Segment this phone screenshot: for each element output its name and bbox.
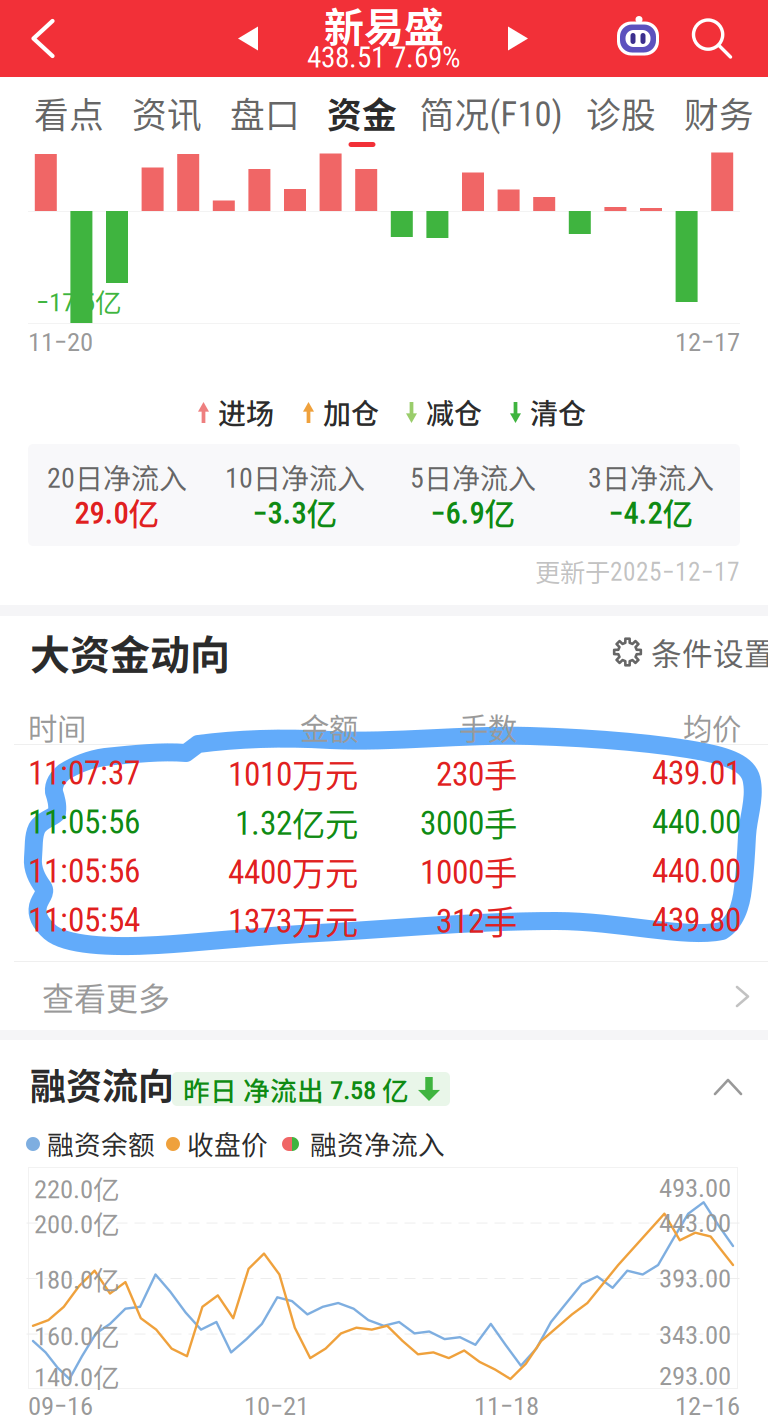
staticText: 293.00 (659, 1360, 731, 1392)
staticText: 减仓 (426, 392, 482, 432)
staticText: 230手 (436, 749, 517, 797)
button[interactable]: Next stock (486, 0, 550, 77)
staticText: 11−20 (28, 326, 93, 358)
staticText: 1010万元 (228, 749, 358, 797)
staticText: 200.0亿 (34, 1204, 120, 1242)
staticText: 29.0亿 (74, 490, 159, 534)
button[interactable]: Search (674, 0, 750, 77)
staticText: 440.00 (652, 851, 741, 891)
staticText: 盘口 (230, 88, 300, 138)
button[interactable]: Previous stock (216, 0, 280, 77)
staticText: 手数 (459, 706, 517, 748)
staticText: 1.32亿元 (235, 798, 358, 846)
staticText: 5日净流入 (410, 457, 536, 497)
staticText: −3.3亿 (252, 490, 337, 534)
staticText: −6.9亿 (430, 490, 515, 534)
staticText: −17.5亿 (36, 282, 122, 320)
staticText: 查看更多 (42, 973, 170, 1020)
staticText: 财务 (684, 88, 754, 138)
staticText: 新易盛 (324, 0, 444, 53)
button[interactable]: 诊股 (555, 77, 687, 155)
staticText: 4400万元 (228, 847, 358, 895)
staticText: 393.00 (659, 1263, 731, 1294)
button[interactable]: 简况(F10) (425, 77, 557, 155)
staticText: 11:05:56 (28, 802, 140, 842)
staticText: 条件设置 (651, 630, 768, 674)
staticText: 20日净流入 (47, 457, 187, 497)
staticText: 220.0亿 (34, 1169, 120, 1207)
staticText: 资讯 (132, 88, 202, 138)
staticText: 清仓 (530, 392, 586, 432)
staticText: 439.80 (652, 900, 741, 940)
staticText: 金额 (300, 706, 358, 748)
staticText: 12−17 (675, 326, 740, 358)
staticText: 10日净流入 (225, 457, 365, 497)
staticText: 343.00 (659, 1319, 731, 1351)
button[interactable]: Collapse (698, 1062, 758, 1112)
staticText: 更新于2025−12−17 (535, 553, 740, 589)
staticText: 融资流向 (30, 1058, 174, 1110)
staticText: 440.00 (652, 802, 741, 842)
staticText: 3日净流入 (588, 457, 714, 497)
button[interactable]: AI assistant (600, 0, 676, 77)
staticText: 3000手 (420, 798, 517, 846)
staticText: 09−16 (28, 1390, 93, 1422)
staticText: 160.0亿 (34, 1316, 120, 1354)
staticText: 加仓 (323, 392, 379, 432)
staticText: 资金 (327, 88, 397, 138)
button[interactable]: 盘口 (199, 77, 331, 155)
staticText: 312手 (436, 896, 517, 944)
staticText: 均价 (683, 706, 741, 748)
staticText: 收盘价 (187, 1124, 268, 1162)
button[interactable]: 查看更多 (0, 962, 768, 1031)
staticText: 大资金动向 (30, 623, 230, 681)
button[interactable]: 资金 (296, 77, 428, 155)
button[interactable]: 看点 (3, 77, 135, 155)
staticText: 140.0亿 (34, 1357, 120, 1395)
button[interactable]: 资讯 (101, 77, 233, 155)
staticText: 443.00 (659, 1207, 731, 1239)
staticText: 11:07:37 (28, 753, 140, 793)
staticText: 昨日 净流出 7.58 亿 (183, 1070, 409, 1108)
staticText: 融资净流入 (310, 1124, 445, 1162)
staticText: 493.00 (659, 1172, 731, 1204)
staticText: 11−18 (474, 1390, 539, 1422)
staticText: 1000手 (420, 847, 517, 895)
staticText: 11:05:56 (28, 851, 140, 891)
staticText: 简况(F10) (419, 88, 562, 138)
staticText: 11:05:54 (28, 900, 140, 940)
button[interactable]: Back (0, 0, 86, 77)
staticText: 10−21 (244, 1390, 309, 1422)
staticText: −4.2亿 (608, 490, 693, 534)
staticText: 看点 (34, 88, 104, 138)
staticText: 438.51 7.69% (307, 40, 461, 75)
staticText: 诊股 (586, 88, 656, 138)
staticText: 时间 (28, 706, 86, 748)
button[interactable]: 条件设置 (614, 629, 768, 675)
staticText: 1373万元 (228, 896, 358, 944)
button[interactable]: 财务 (653, 77, 768, 155)
staticText: 12−16 (675, 1390, 740, 1422)
staticText: 180.0亿 (34, 1259, 120, 1298)
staticText: 融资余额 (47, 1124, 155, 1162)
staticText: 进场 (218, 392, 274, 432)
staticText: 439.01 (652, 753, 741, 793)
